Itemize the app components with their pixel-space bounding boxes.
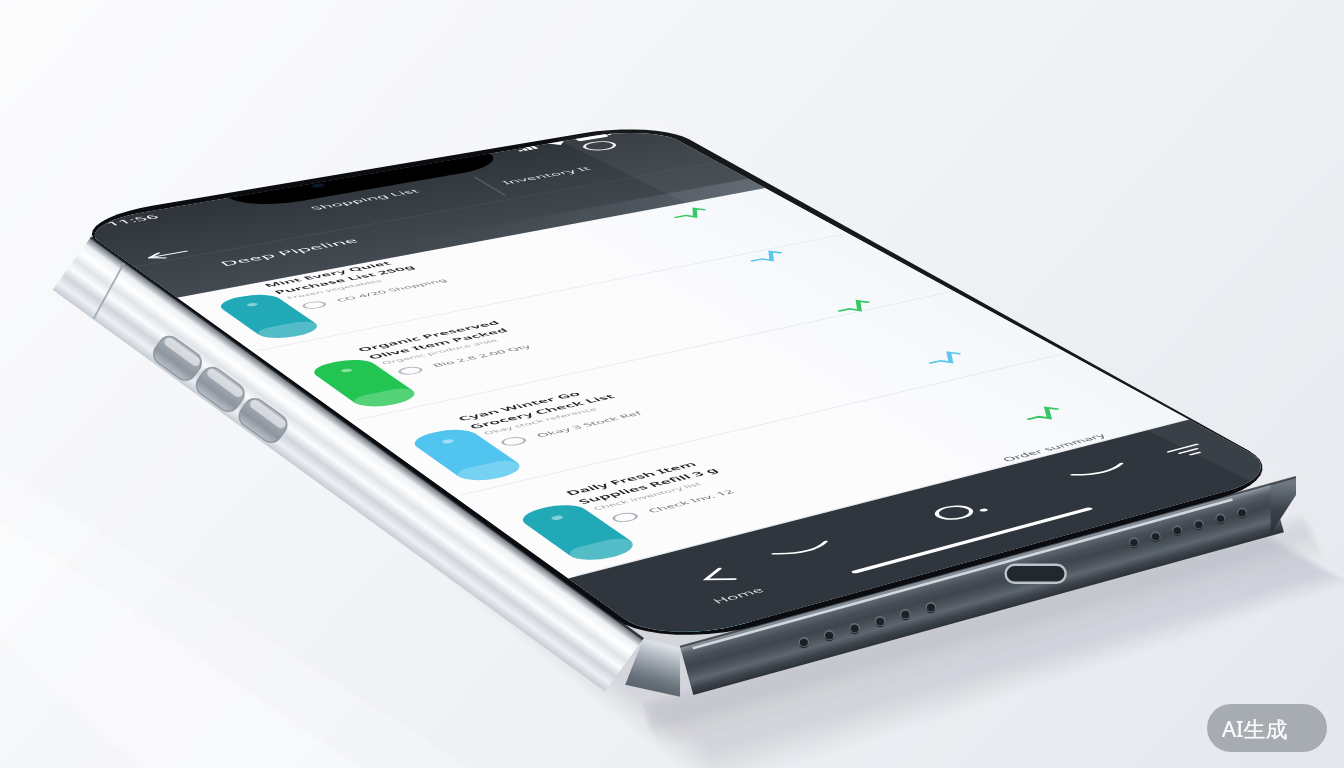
button[interactable]: Menu <box>1123 424 1254 477</box>
button[interactable]: Back <box>132 243 233 277</box>
button[interactable] <box>463 141 691 193</box>
button[interactable] <box>189 189 830 344</box>
button[interactable]: Home screen <box>874 481 1033 545</box>
button[interactable] <box>486 366 1169 569</box>
button[interactable]: Back navigation <box>735 516 895 583</box>
button[interactable] <box>379 303 1048 488</box>
button[interactable] <box>271 176 484 227</box>
button[interactable] <box>281 244 936 413</box>
button[interactable]: Home <box>645 541 795 606</box>
button[interactable] <box>601 433 1298 656</box>
button[interactable]: Recent apps <box>1023 444 1177 505</box>
